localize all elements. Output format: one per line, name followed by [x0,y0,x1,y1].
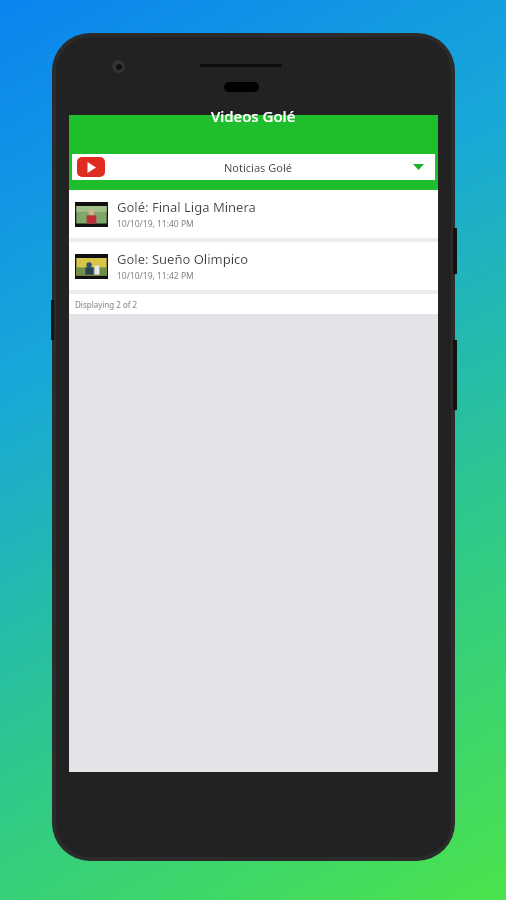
staticText: 10/10/19, 11:40 PM [117,218,194,230]
staticText: 10/10/19, 11:42 PM [117,270,194,282]
staticText: Gole: Sueño Olimpico [117,250,249,268]
button[interactable]: Golé: Final Liga Minera [69,190,438,238]
other: YouTube [77,157,105,177]
staticText: Videos Golé [211,106,296,126]
button[interactable]: Gole: Sueño Olimpico [69,242,438,290]
button[interactable]: YouTube [72,154,435,180]
staticText: Displaying 2 of 2 [75,299,138,310]
staticText: Golé: Final Liga Minera [117,198,256,216]
staticText: Noticias Golé [224,160,292,175]
